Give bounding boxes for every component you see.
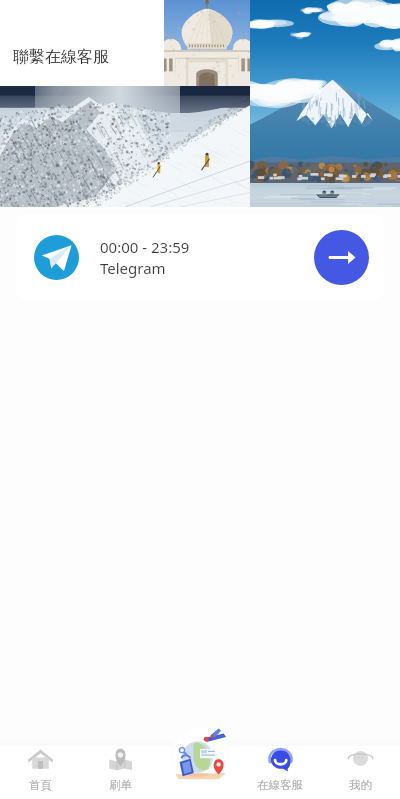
button[interactable]: 首頁 [0, 740, 80, 799]
button[interactable]: 00:00 - 23:59 [16, 214, 384, 300]
button[interactable]: Open Telegram [314, 230, 369, 285]
staticText: 聯繫在線客服 [13, 47, 109, 67]
button[interactable]: 刷单 [80, 740, 160, 799]
button[interactable]: Travel [169, 721, 231, 783]
button[interactable]: 我的 [320, 740, 400, 799]
staticText: 刷单 [109, 778, 132, 792]
button[interactable]: 在線客服 [240, 740, 320, 799]
staticText: 我的 [349, 778, 372, 792]
staticText: 在線客服 [257, 778, 303, 792]
staticText: 00:00 - 23:59 [100, 237, 190, 257]
staticText: 首頁 [29, 778, 52, 792]
staticText: Telegram [100, 258, 166, 278]
